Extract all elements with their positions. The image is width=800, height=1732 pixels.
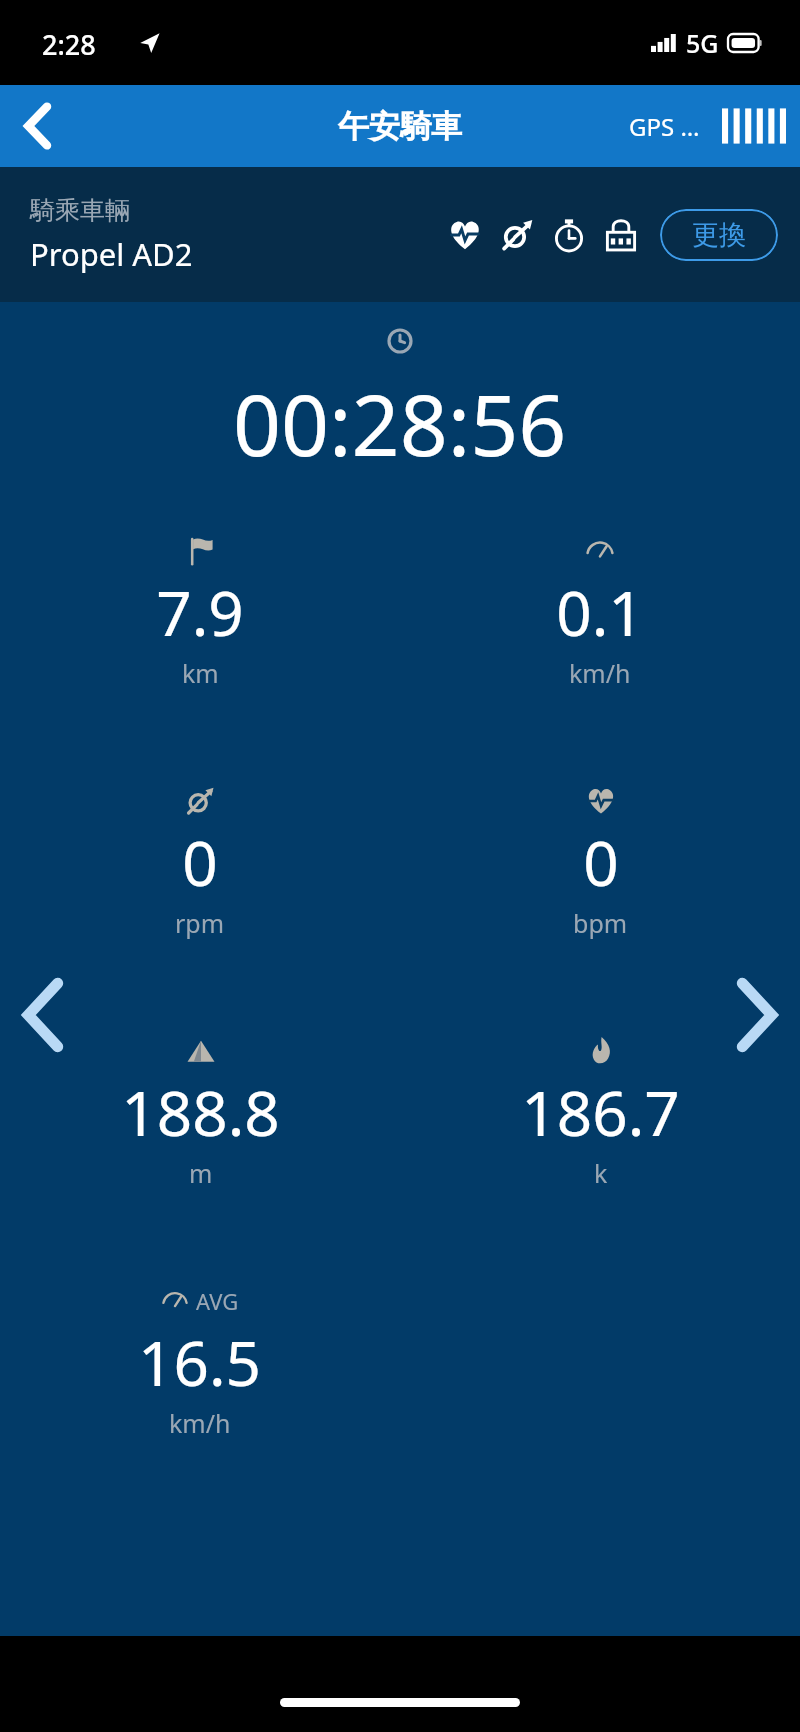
staticText: km/h bbox=[569, 656, 631, 690]
button[interactable]: 更換 bbox=[660, 209, 778, 261]
button[interactable]: 0.1 bbox=[556, 536, 644, 690]
button[interactable]: Next page bbox=[718, 976, 796, 1054]
staticText: 更換 bbox=[692, 218, 746, 252]
button[interactable]: 00:28:56 bbox=[0, 328, 800, 480]
button[interactable]: 188.8 bbox=[121, 1036, 280, 1190]
staticText: 0 bbox=[182, 820, 218, 904]
button[interactable]: 0 bbox=[573, 786, 628, 940]
staticText: m bbox=[189, 1156, 213, 1190]
staticText: 0 bbox=[583, 820, 619, 904]
button[interactable]: Back bbox=[0, 88, 76, 164]
staticText: 騎乘車輛 bbox=[30, 195, 130, 226]
staticText: k bbox=[594, 1156, 608, 1190]
staticText: km/h bbox=[169, 1406, 231, 1440]
staticText: 7.9 bbox=[156, 570, 244, 654]
button[interactable]: 0 bbox=[175, 786, 225, 940]
staticText: 5G bbox=[686, 26, 719, 60]
button[interactable]: 186.7 bbox=[521, 1036, 680, 1190]
staticText: Propel AD2 bbox=[30, 233, 193, 275]
staticText: bpm bbox=[573, 906, 628, 940]
button[interactable]: AVG bbox=[138, 1286, 262, 1440]
staticText: 2:28 bbox=[42, 26, 96, 63]
staticText: 00:28:56 bbox=[233, 366, 567, 480]
staticText: km bbox=[182, 656, 219, 690]
staticText: GPS … bbox=[629, 110, 700, 143]
button[interactable]: Previous page bbox=[4, 976, 82, 1054]
staticText: 0.1 bbox=[556, 570, 644, 654]
staticText: AVG bbox=[196, 1286, 239, 1316]
staticText: 午安騎車 bbox=[338, 107, 462, 146]
staticText: 188.8 bbox=[121, 1070, 280, 1154]
staticText: 186.7 bbox=[521, 1070, 680, 1154]
button[interactable]: 7.9 bbox=[156, 536, 244, 690]
staticText: 16.5 bbox=[138, 1320, 262, 1404]
staticText: rpm bbox=[175, 906, 225, 940]
